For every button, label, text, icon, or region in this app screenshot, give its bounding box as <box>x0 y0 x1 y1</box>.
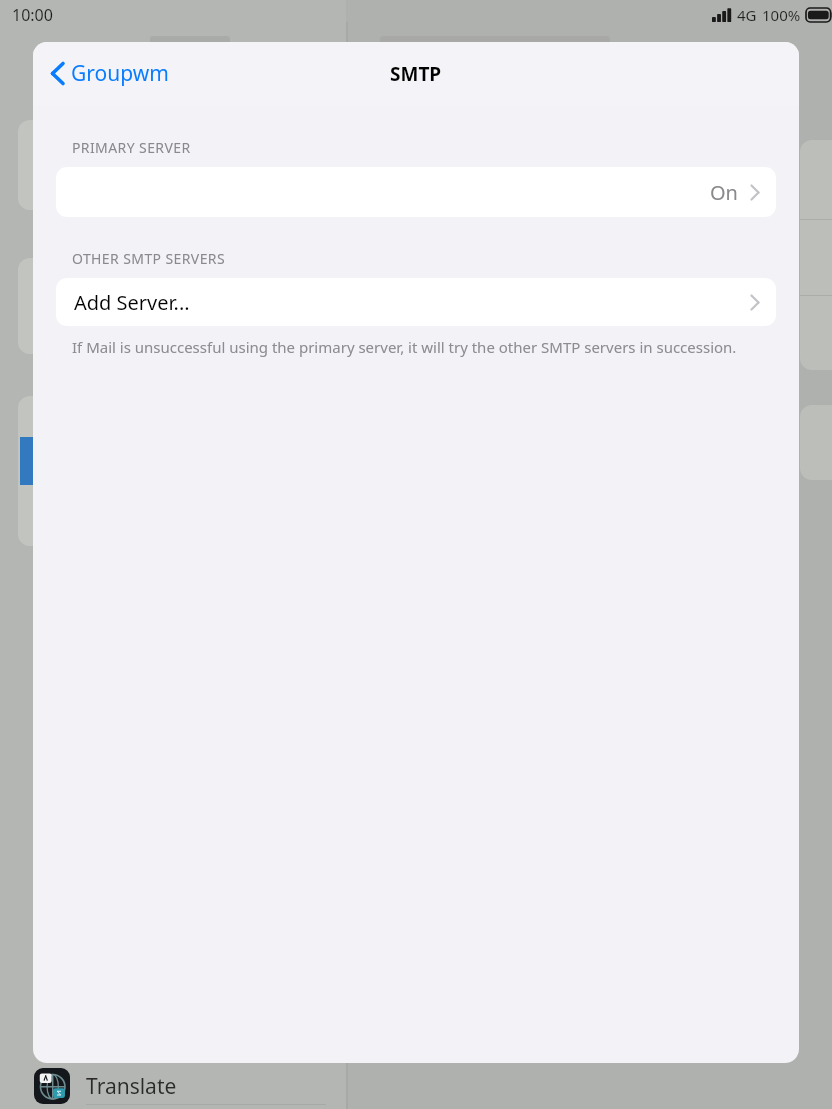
staticText: Translate <box>86 1072 177 1101</box>
button[interactable]: Add Server... <box>56 278 776 326</box>
staticText: OTHER SMTP SERVERS <box>72 249 226 268</box>
button[interactable]: On <box>56 167 776 217</box>
staticText: 10:00 <box>12 4 53 26</box>
staticText: 4G <box>737 5 757 25</box>
staticText: PRIMARY SERVER <box>72 138 191 157</box>
button[interactable]: Translate <box>0 1063 346 1109</box>
button[interactable]: Groupwm <box>51 59 169 88</box>
staticText: If Mail is unsuccessful using the primar… <box>72 337 769 357</box>
staticText: Groupwm <box>71 59 169 88</box>
staticText: SMTP <box>390 61 442 87</box>
staticText: Add Server... <box>74 289 190 316</box>
staticText: 100% <box>762 5 801 25</box>
staticText: On <box>710 179 738 206</box>
